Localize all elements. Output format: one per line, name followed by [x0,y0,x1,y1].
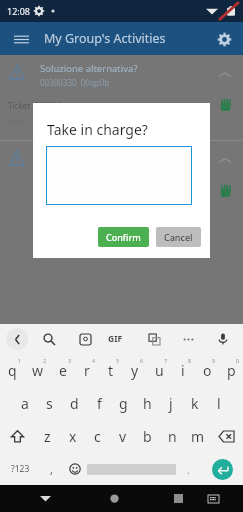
staticText: Confirm [106,231,141,243]
button[interactable]: k [183,387,207,420]
staticText: 12:08 [7,5,31,17]
button[interactable]: u [147,354,171,387]
button[interactable]: . [176,453,201,485]
button[interactable]: v [110,420,135,453]
staticText: t [108,361,114,380]
staticText: , [50,462,53,477]
button[interactable]: a [12,387,37,420]
staticText: o [203,361,212,380]
button[interactable]: s [37,387,62,420]
staticText: 6 [140,357,144,364]
staticText: e [59,361,67,380]
button[interactable]: z [34,420,60,453]
button[interactable]: l [207,387,231,420]
staticText: 7 [164,357,168,364]
button[interactable]: Stickers [73,327,97,351]
staticText: w [32,361,44,380]
button[interactable]: w [25,354,50,387]
staticText: 00300330 00qp0b [40,77,110,88]
staticText: 4 [92,357,96,364]
button[interactable]: ?123 [0,453,40,485]
button[interactable]: j [159,387,183,420]
button[interactable]: Emoji [62,453,87,485]
button[interactable]: Cancel [156,227,201,247]
staticText: 9 [212,357,216,364]
button[interactable]: Home [97,485,132,512]
button[interactable]: , [40,453,62,485]
button[interactable]: Soluzione alternativa? [0,55,243,140]
button[interactable]: o [195,354,219,387]
staticText: ?123 [11,463,30,475]
staticText: Cancel [164,231,193,243]
button[interactable]: Search [37,327,61,351]
staticText: m [191,427,205,446]
button[interactable]: Voice input [211,327,235,351]
staticText: j [169,394,173,413]
staticText: . [187,462,190,477]
button[interactable]: r [75,354,99,387]
button[interactable]: Shift [0,420,34,453]
staticText: 0 [236,357,240,364]
button[interactable]: q [0,354,25,387]
button[interactable]: i [171,354,195,387]
staticText: Take in charge? [47,120,148,139]
button[interactable]: y [123,354,147,387]
staticText: p [227,361,236,380]
staticText: i [181,361,185,380]
staticText: b [143,427,152,446]
button[interactable]: More options [176,327,200,351]
staticText: h [143,394,152,413]
button[interactable]: f [87,387,111,420]
staticText: f [97,394,102,413]
button[interactable]: GIF [108,333,123,345]
button[interactable]: Backspace [210,420,243,453]
button[interactable]: e [50,354,75,387]
button[interactable]: Space [87,453,176,485]
staticText: a [21,394,29,413]
button[interactable]: h [135,387,159,420]
staticText: Soluzione alternativa? [40,62,138,75]
staticText: 8 [188,357,192,364]
button[interactable]: Collapse toolbar [6,328,28,350]
staticText: 2 [43,357,47,364]
staticText: s [46,394,53,413]
button[interactable] [0,141,243,226]
staticText: z [44,427,51,446]
button[interactable]: Confirm [98,227,149,247]
button[interactable]: Translate [142,327,166,351]
button[interactable]: g [111,387,135,420]
staticText: n [168,427,177,446]
staticText: l [217,394,221,413]
button[interactable]: b [135,420,160,453]
button[interactable]: Open navigation menu [8,26,34,52]
button[interactable]: c [85,420,110,453]
button[interactable]: Enter [201,453,243,485]
staticText: g [119,394,128,413]
staticText: y [131,361,139,380]
button[interactable]: d [62,387,87,420]
staticText: k [191,394,199,413]
button[interactable]: p [219,354,243,387]
staticText: q [8,361,17,380]
button[interactable]: Back [28,485,62,512]
staticText: 3 [68,357,72,364]
button[interactable]: Recent apps [161,485,196,512]
staticText: Ticket 000000 [8,100,62,111]
staticText: 1 [18,357,22,364]
staticText: r [84,361,90,380]
staticText: x [69,427,77,446]
staticText: d [70,394,79,413]
button[interactable]: t [99,354,123,387]
button[interactable]: n [160,420,185,453]
staticText: u [155,361,164,380]
staticText: c [94,427,101,446]
button[interactable] [46,146,192,205]
button[interactable]: x [60,420,85,453]
staticText: 5 [116,357,120,364]
button[interactable]: Switch keyboard [196,485,231,512]
staticText: My Group's Activities [44,30,166,47]
button[interactable]: Settings [211,26,237,52]
button[interactable]: m [185,420,210,453]
staticText: v [119,427,127,446]
